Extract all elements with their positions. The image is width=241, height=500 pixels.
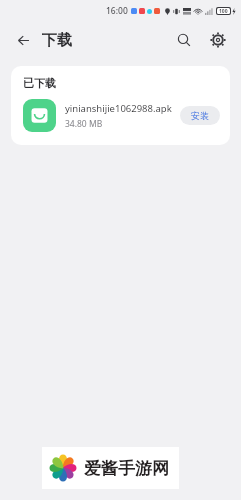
staticText: 34.80 MB (65, 118, 103, 130)
button[interactable]: Search (171, 27, 197, 53)
staticText: 爱酱手游网 (84, 458, 169, 479)
staticText: 已下载 (23, 76, 56, 90)
staticText: 下载 (42, 31, 72, 50)
button[interactable]: Back (10, 27, 36, 53)
staticText: 安装 (191, 110, 209, 121)
button[interactable]: yinianshijie1062988.apk (11, 90, 230, 145)
staticText: yinianshijie1062988.apk (65, 102, 172, 115)
staticText: 16:00 (106, 5, 128, 17)
button[interactable]: 安装 (180, 106, 220, 125)
button[interactable]: Settings (205, 27, 231, 53)
staticText: 100 (219, 8, 228, 14)
